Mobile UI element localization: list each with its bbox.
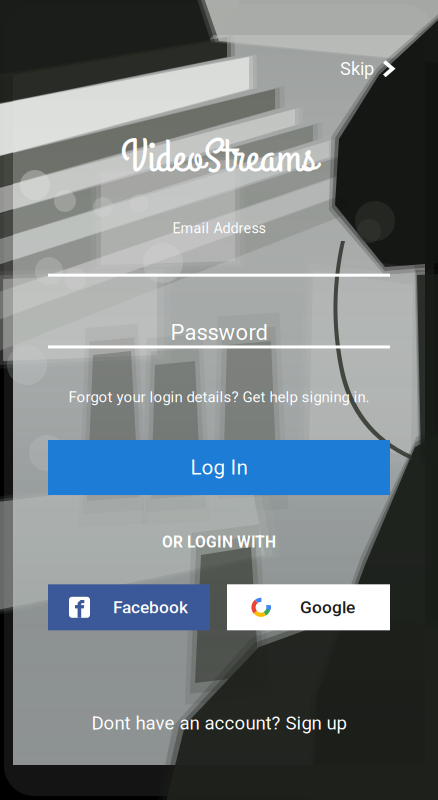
staticText: Password <box>170 320 267 345</box>
button[interactable]: Dont have an account? Sign up <box>75 704 362 742</box>
staticText: Google <box>300 597 355 617</box>
staticText: Dont have an account? Sign up <box>91 712 346 734</box>
staticText: Facebook <box>113 597 188 617</box>
staticText: Log In <box>190 455 247 480</box>
button[interactable]: Google <box>227 584 390 630</box>
button[interactable]: Facebook <box>48 584 210 630</box>
button[interactable]: Log In <box>48 440 390 495</box>
staticText: VideoStreams <box>121 126 317 190</box>
staticText: OR LOGIN WITH <box>162 533 276 551</box>
button[interactable]: Skip <box>329 51 407 86</box>
staticText: Forgot your login details? Get help sign… <box>68 388 369 406</box>
staticText: Email Address <box>172 220 265 237</box>
staticText: Skip <box>340 58 374 79</box>
